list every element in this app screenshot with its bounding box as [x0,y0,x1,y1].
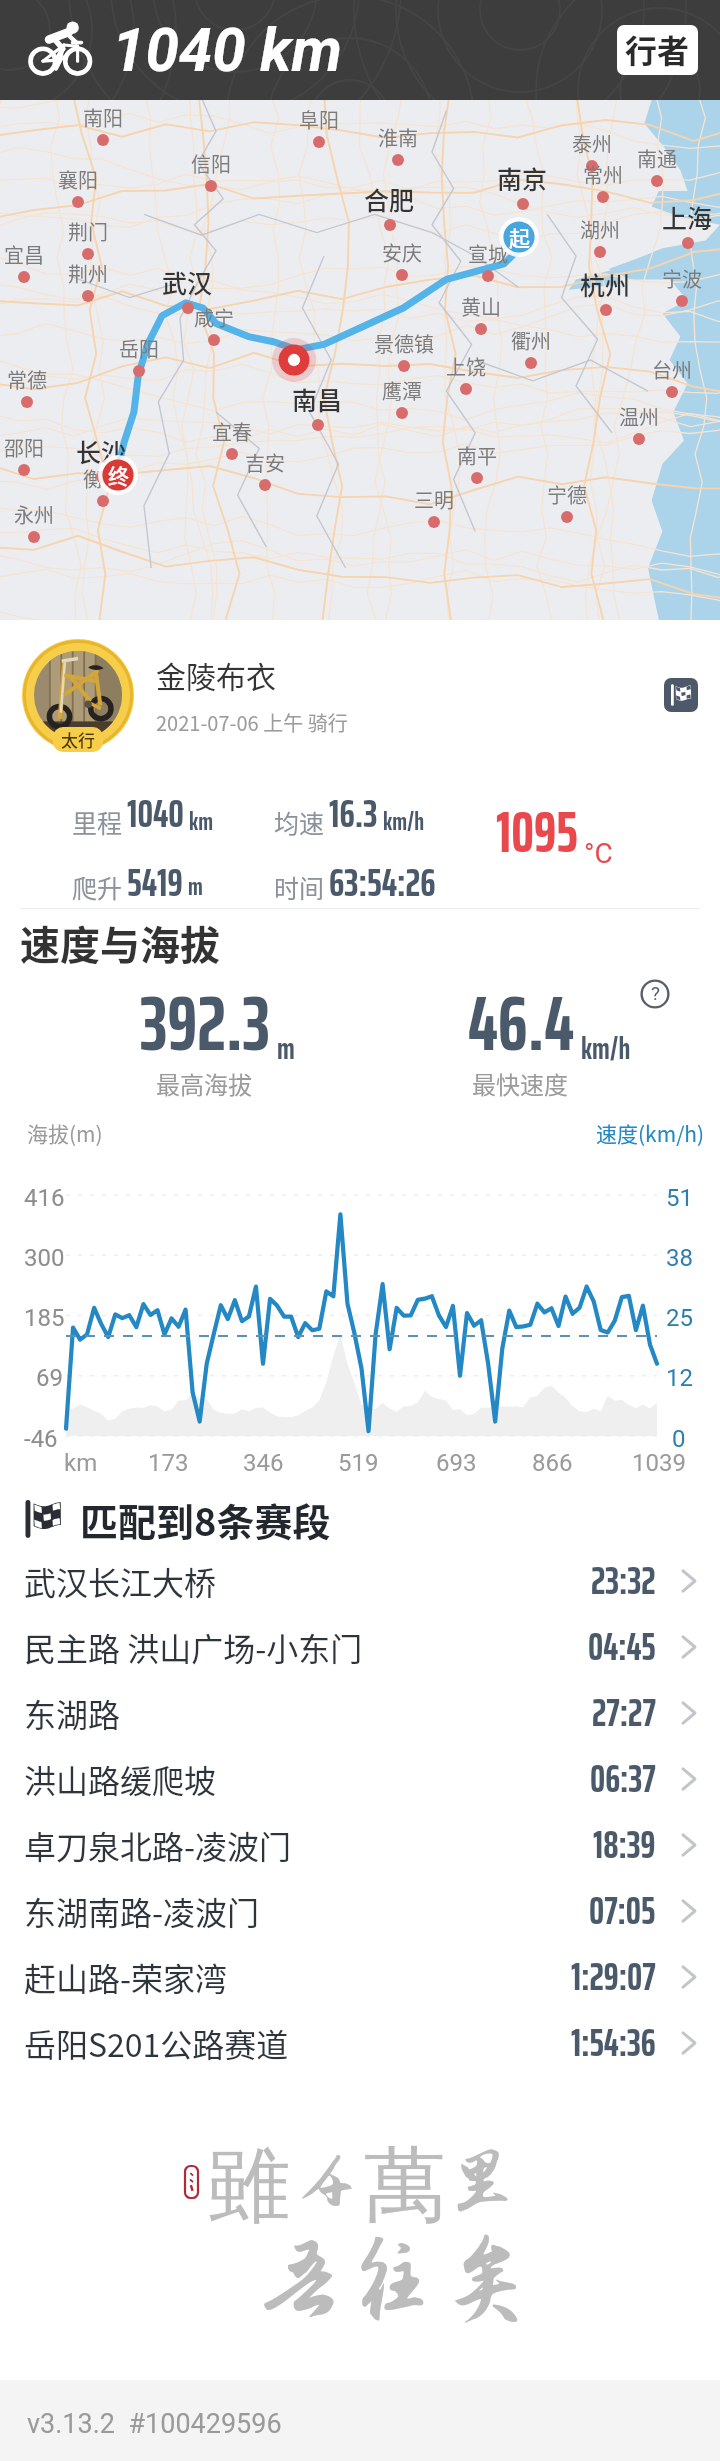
staticText: 185 [24,1304,65,1332]
staticText: 693 [436,1449,477,1477]
staticText: 宣城 [468,239,508,268]
staticText: 宁德 [547,480,587,509]
staticText: 衡阳 [83,464,123,493]
staticText: 南京 [497,160,548,196]
staticText: 12 [666,1364,693,1392]
staticText: 岳阳S201公路赛道 [24,2020,289,2066]
button[interactable]: 卓刀泉北路-凌波门 [0,1812,720,1878]
staticText: 南阳 [83,103,123,132]
staticText: m [188,867,203,906]
staticText: 173 [148,1449,189,1477]
staticText: 三明 [414,485,454,514]
staticText: 爬升 [72,869,123,905]
staticText: 宁波 [662,264,702,293]
staticText: 起 [509,222,530,252]
staticText: 民主路 洪山广场-小东门 [24,1624,363,1670]
staticText: 东湖南路-凌波门 [24,1888,260,1934]
staticText: 2021-07-06 上午 骑行 [156,708,348,737]
staticText: 16.3 [329,783,378,844]
staticText: 岳阳 [119,334,159,363]
staticText: 合肥 [364,181,415,217]
staticText: 最快速度 [472,1066,568,1101]
staticText: 速度与海拔 [20,914,220,972]
staticText: 38 [666,1244,693,1272]
button[interactable]: Segments [664,678,698,712]
staticText: km [64,1449,98,1477]
staticText: 0 [672,1425,686,1453]
staticText: 上海 [662,199,713,235]
staticText: 淮南 [378,123,418,152]
staticText: 上饶 [446,352,486,381]
staticText: 行者 [625,26,690,72]
staticText: 1095 [496,787,578,877]
staticText: 襄阳 [58,165,98,194]
staticText: 南昌 [292,381,343,417]
staticText: 04:45 [588,1617,656,1677]
staticText: 300 [24,1244,65,1272]
staticText: 最高海拔 [156,1066,252,1101]
button[interactable]: 洪山路缓爬坡 [0,1746,720,1812]
staticText: 杭州 [580,266,631,302]
staticText: 速度(km/h) [596,1118,705,1148]
staticText: 阜阳 [299,105,339,134]
staticText: 23:32 [591,1551,656,1611]
button[interactable]: 岳阳S201公路赛道 [0,2010,720,2076]
staticText: 时间 [274,869,325,905]
staticText: 台州 [652,355,692,384]
staticText: 常州 [583,160,623,189]
staticText: 1:54:36 [571,2013,656,2073]
staticText: 海拔(m) [27,1118,103,1148]
staticText: v3.13.2 #100429596 [27,2408,282,2440]
button[interactable]: 东湖南路-凌波门 [0,1878,720,1944]
button[interactable]: 赶山路-荣家湾 [0,1944,720,2010]
staticText: -46 [24,1425,58,1453]
staticText: 邵阳 [4,433,44,462]
staticText: 392.3 [140,964,271,1084]
staticText: 匹配到8条赛段 [80,1492,331,1547]
staticText: 咸宁 [194,303,234,332]
button[interactable]: 行者 [617,25,698,75]
staticText: 均速 [274,804,325,840]
staticText: 63:54:26 [329,852,436,909]
staticText: 温州 [619,402,659,431]
staticText: 武汉长江大桥 [24,1558,217,1604]
staticText: km/h [581,1025,631,1072]
staticText: 太行 [61,727,95,752]
staticText: 泰州 [572,129,612,158]
staticText: 长沙 [76,433,127,469]
staticText: 荆门 [68,217,108,246]
staticText: 1040 [127,783,184,844]
staticText: 南平 [457,441,497,470]
button[interactable]: 东湖路 [0,1680,720,1746]
staticText: 东湖路 [24,1690,121,1736]
staticText: 06:37 [590,1749,656,1809]
staticText: 416 [24,1184,65,1212]
staticText: 永州 [14,500,54,529]
staticText: 安庆 [382,238,422,267]
staticText: 51 [666,1184,693,1212]
staticText: 雖千萬里 [208,2134,520,2237]
staticText: 常德 [7,365,47,394]
staticText: m [277,1025,295,1072]
staticText: 荆州 [68,259,108,288]
button[interactable]: Help [640,979,670,1009]
staticText: 武汉 [162,264,213,300]
button[interactable]: 民主路 洪山广场-小东门 [0,1614,720,1680]
staticText: 宜昌 [4,240,44,269]
staticText: 宜春 [212,417,252,446]
staticText: 18:39 [593,1815,656,1875]
button[interactable]: 太行 [0,620,720,770]
staticText: 46.4 [468,964,575,1084]
staticText: 吾往矣 [252,2228,533,2332]
staticText: 1040 km [112,15,342,85]
button[interactable]: 武汉长江大桥 [0,1548,720,1614]
staticText: 景德镇 [374,329,434,358]
staticText: 1:29:07 [571,1947,656,2007]
staticText: 5419 [127,852,183,909]
staticText: 吉安 [245,448,285,477]
button[interactable]: 南阳 [0,100,720,620]
staticText: 湖州 [580,215,620,244]
staticText: 赶山路-荣家湾 [24,1954,228,2000]
staticText: °C [584,837,613,870]
staticText: 南通 [637,144,677,173]
